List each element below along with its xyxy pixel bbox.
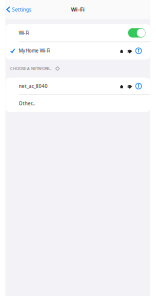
staticText: Wi-Fi xyxy=(19,30,29,36)
button[interactable]: net_ac_8040 xyxy=(5,78,150,95)
button[interactable]: Settings xyxy=(5,2,32,17)
staticText: net_ac_8040 xyxy=(19,83,48,89)
staticText: Other... xyxy=(19,100,35,107)
staticText: Wi-Fi xyxy=(71,6,85,13)
button[interactable]: Wi-Fi xyxy=(5,24,150,42)
button[interactable]: My Home Wi-Fi xyxy=(5,42,150,59)
staticText: Settings xyxy=(12,6,32,13)
button[interactable]: Other... xyxy=(5,95,150,112)
staticText: My Home Wi-Fi xyxy=(19,48,50,54)
staticText: CHOOSE A NETWORK... xyxy=(10,66,52,71)
